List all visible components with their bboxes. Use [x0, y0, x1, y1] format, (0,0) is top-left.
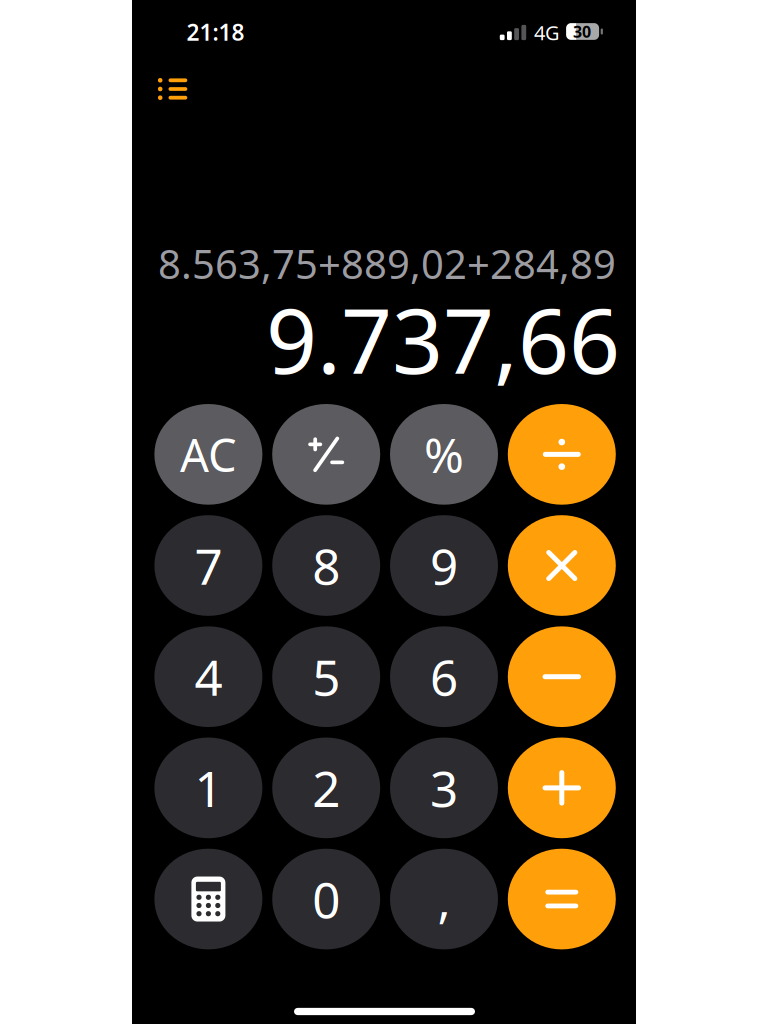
button[interactable]: AC	[154, 404, 262, 505]
button[interactable]: 8	[272, 515, 380, 616]
button[interactable]: 5	[272, 626, 380, 727]
button[interactable]: Toggle sign	[272, 404, 380, 505]
staticText: %	[424, 422, 464, 486]
button[interactable]: 9	[390, 515, 498, 616]
staticText: 3	[430, 755, 458, 821]
button[interactable]: Divide	[508, 404, 616, 505]
button[interactable]: ,	[390, 849, 498, 949]
button[interactable]: 1	[154, 737, 262, 838]
button[interactable]: 0	[272, 849, 380, 949]
button[interactable]: Subtract	[508, 626, 616, 727]
staticText: 4G	[534, 19, 560, 46]
button[interactable]: %	[390, 404, 498, 505]
button[interactable]: 7	[154, 515, 262, 616]
staticText: 30	[573, 21, 591, 42]
staticText: 6	[430, 644, 458, 709]
staticText: 2	[312, 755, 340, 821]
button[interactable]: Multiply	[508, 515, 616, 616]
button[interactable]: History	[148, 69, 197, 109]
staticText: ,	[437, 866, 450, 932]
button[interactable]: 3	[390, 737, 498, 838]
staticText: 9.737,66	[266, 280, 620, 398]
staticText: 8.563,75+889,02+284,89	[158, 237, 616, 290]
button[interactable]: 2	[272, 737, 380, 838]
staticText: 1	[194, 755, 222, 821]
staticText: AC	[180, 424, 237, 484]
staticText: 8	[312, 533, 340, 598]
staticText: 5	[312, 644, 340, 709]
button[interactable]: Calculator	[154, 849, 262, 949]
button[interactable]: Add	[508, 737, 616, 838]
staticText: 0	[312, 866, 340, 932]
staticText: 4	[194, 644, 222, 709]
staticText: 21:18	[186, 17, 244, 47]
staticText: 7	[194, 533, 222, 598]
button[interactable]: 6	[390, 626, 498, 727]
button[interactable]: Equals	[508, 849, 616, 949]
staticText: 9	[430, 533, 458, 598]
button[interactable]: 4	[154, 626, 262, 727]
